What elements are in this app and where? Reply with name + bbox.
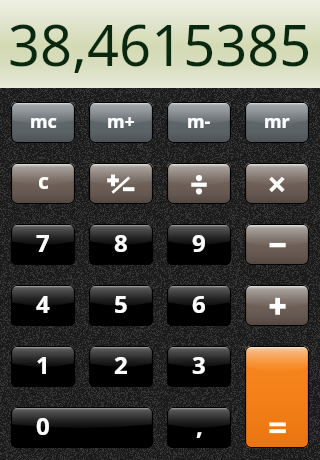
- staticText: m+: [107, 109, 135, 134]
- button[interactable]: 0: [11, 407, 153, 448]
- button[interactable]: 1: [11, 346, 75, 387]
- button[interactable]: mc: [11, 102, 75, 143]
- staticText: 9: [192, 226, 206, 258]
- staticText: ,: [196, 409, 203, 441]
- button[interactable]: 7: [11, 224, 75, 265]
- button[interactable]: 4: [11, 285, 75, 326]
- button[interactable]: mr: [245, 102, 309, 143]
- staticText: 4: [36, 287, 50, 319]
- staticText: 6: [192, 287, 206, 319]
- button[interactable]: 2: [89, 346, 153, 387]
- button[interactable]: Multiply: [245, 163, 309, 204]
- staticText: 5: [114, 287, 128, 319]
- button[interactable]: Equals: [245, 346, 309, 448]
- staticText: 1: [36, 348, 50, 380]
- staticText: 3: [192, 348, 206, 380]
- button[interactable]: 6: [167, 285, 231, 326]
- button[interactable]: m-: [167, 102, 231, 143]
- button[interactable]: Divide: [167, 163, 231, 204]
- staticText: m-: [187, 109, 211, 134]
- staticText: mc: [30, 109, 57, 134]
- staticText: 7: [36, 226, 50, 258]
- button[interactable]: m+: [89, 102, 153, 143]
- button[interactable]: 5: [89, 285, 153, 326]
- button[interactable]: Minus: [245, 224, 309, 265]
- button[interactable]: Plus: [245, 285, 309, 326]
- staticText: 2: [114, 348, 128, 380]
- button[interactable]: Plus minus: [89, 163, 153, 204]
- button[interactable]: ,: [167, 407, 231, 448]
- staticText: 8: [114, 226, 128, 258]
- button[interactable]: c: [11, 163, 75, 204]
- button[interactable]: 3: [167, 346, 231, 387]
- button[interactable]: 8: [89, 224, 153, 265]
- button[interactable]: 9: [167, 224, 231, 265]
- staticText: c: [38, 167, 49, 196]
- staticText: 0: [36, 409, 50, 441]
- staticText: 38,4615385: [8, 6, 312, 82]
- staticText: mr: [264, 109, 290, 134]
